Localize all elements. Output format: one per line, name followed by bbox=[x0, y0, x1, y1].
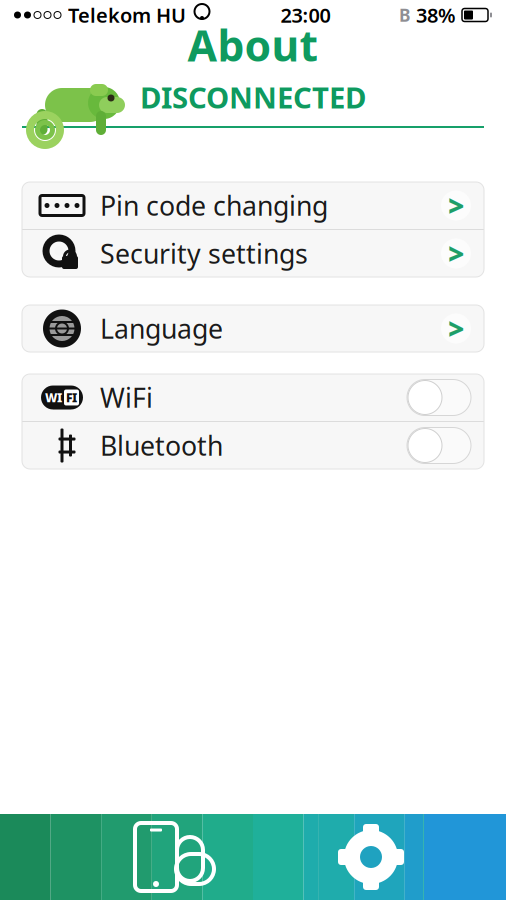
staticText: Security settings bbox=[100, 236, 308, 271]
staticText: 23:00 bbox=[280, 2, 330, 28]
staticText: Bluetooth bbox=[100, 428, 223, 463]
staticText: > bbox=[448, 310, 464, 347]
staticText: Telekom HU bbox=[68, 2, 186, 28]
staticText: About bbox=[187, 17, 318, 73]
staticText: B bbox=[399, 3, 411, 26]
staticText: > bbox=[448, 187, 464, 224]
button[interactable]: Security settings bbox=[22, 230, 484, 277]
staticText: 38% bbox=[416, 2, 456, 28]
staticText: DISCONNECTED bbox=[140, 77, 366, 116]
button[interactable]: WI bbox=[22, 374, 484, 422]
staticText: Language bbox=[100, 311, 223, 346]
staticText: FI bbox=[66, 389, 77, 405]
button[interactable]: Control bbox=[0, 814, 318, 900]
button[interactable]: Pin code changing bbox=[22, 182, 484, 230]
button[interactable]: Settings bbox=[319, 814, 423, 900]
button[interactable]: Language bbox=[22, 305, 484, 352]
staticText: WI bbox=[45, 389, 62, 405]
staticText: > bbox=[448, 235, 464, 272]
button[interactable]: Bluetooth bbox=[22, 422, 484, 469]
staticText: WiFi bbox=[100, 380, 153, 415]
staticText: Pin code changing bbox=[100, 188, 328, 223]
